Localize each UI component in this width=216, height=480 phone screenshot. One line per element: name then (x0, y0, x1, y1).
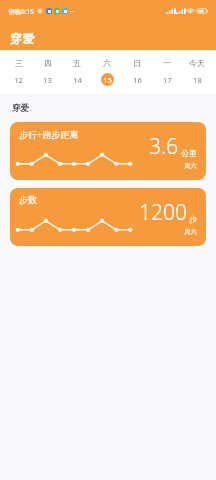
staticText: 今天 (189, 58, 205, 68)
staticText: 周六 (184, 228, 197, 236)
staticText: 穿爱 (12, 103, 29, 114)
staticText: 一 (163, 58, 171, 68)
staticText: 16 (133, 75, 142, 85)
staticText: 穿爱 (10, 31, 34, 46)
staticText: 13 (43, 75, 52, 85)
staticText: 步行+跑步距离 (19, 128, 79, 140)
staticText: 12 (14, 75, 23, 85)
button[interactable]: 步数 (10, 188, 206, 246)
staticText: 1200 (139, 198, 187, 227)
button[interactable]: 步行+跑步距离 (10, 122, 206, 180)
staticText: 18 (193, 75, 202, 85)
button[interactable]: 六 (92, 50, 122, 93)
staticText: 五 (73, 58, 81, 68)
button[interactable]: 四 (33, 50, 62, 93)
staticText: 四 (44, 58, 52, 68)
staticText: 14 (73, 75, 82, 85)
staticText: 傍晚6:15 (8, 7, 34, 16)
staticText: 步数 (19, 194, 37, 205)
button[interactable]: 日 (122, 50, 152, 93)
staticText: 三 (15, 58, 23, 68)
staticText: ··· (70, 7, 75, 15)
staticText: 17 (163, 75, 172, 85)
staticText: 15 (103, 75, 112, 85)
button[interactable]: 一 (152, 50, 182, 93)
staticText: 六 (103, 58, 111, 68)
staticText: 3.6 (149, 132, 179, 161)
button[interactable]: 五 (62, 50, 92, 93)
staticText: 日 (133, 58, 141, 68)
staticText: 步 (189, 214, 197, 224)
button[interactable]: 今天 (182, 50, 212, 93)
staticText: 周六 (184, 162, 197, 170)
staticText: 公里 (181, 148, 197, 158)
button[interactable]: 三 (4, 50, 33, 93)
